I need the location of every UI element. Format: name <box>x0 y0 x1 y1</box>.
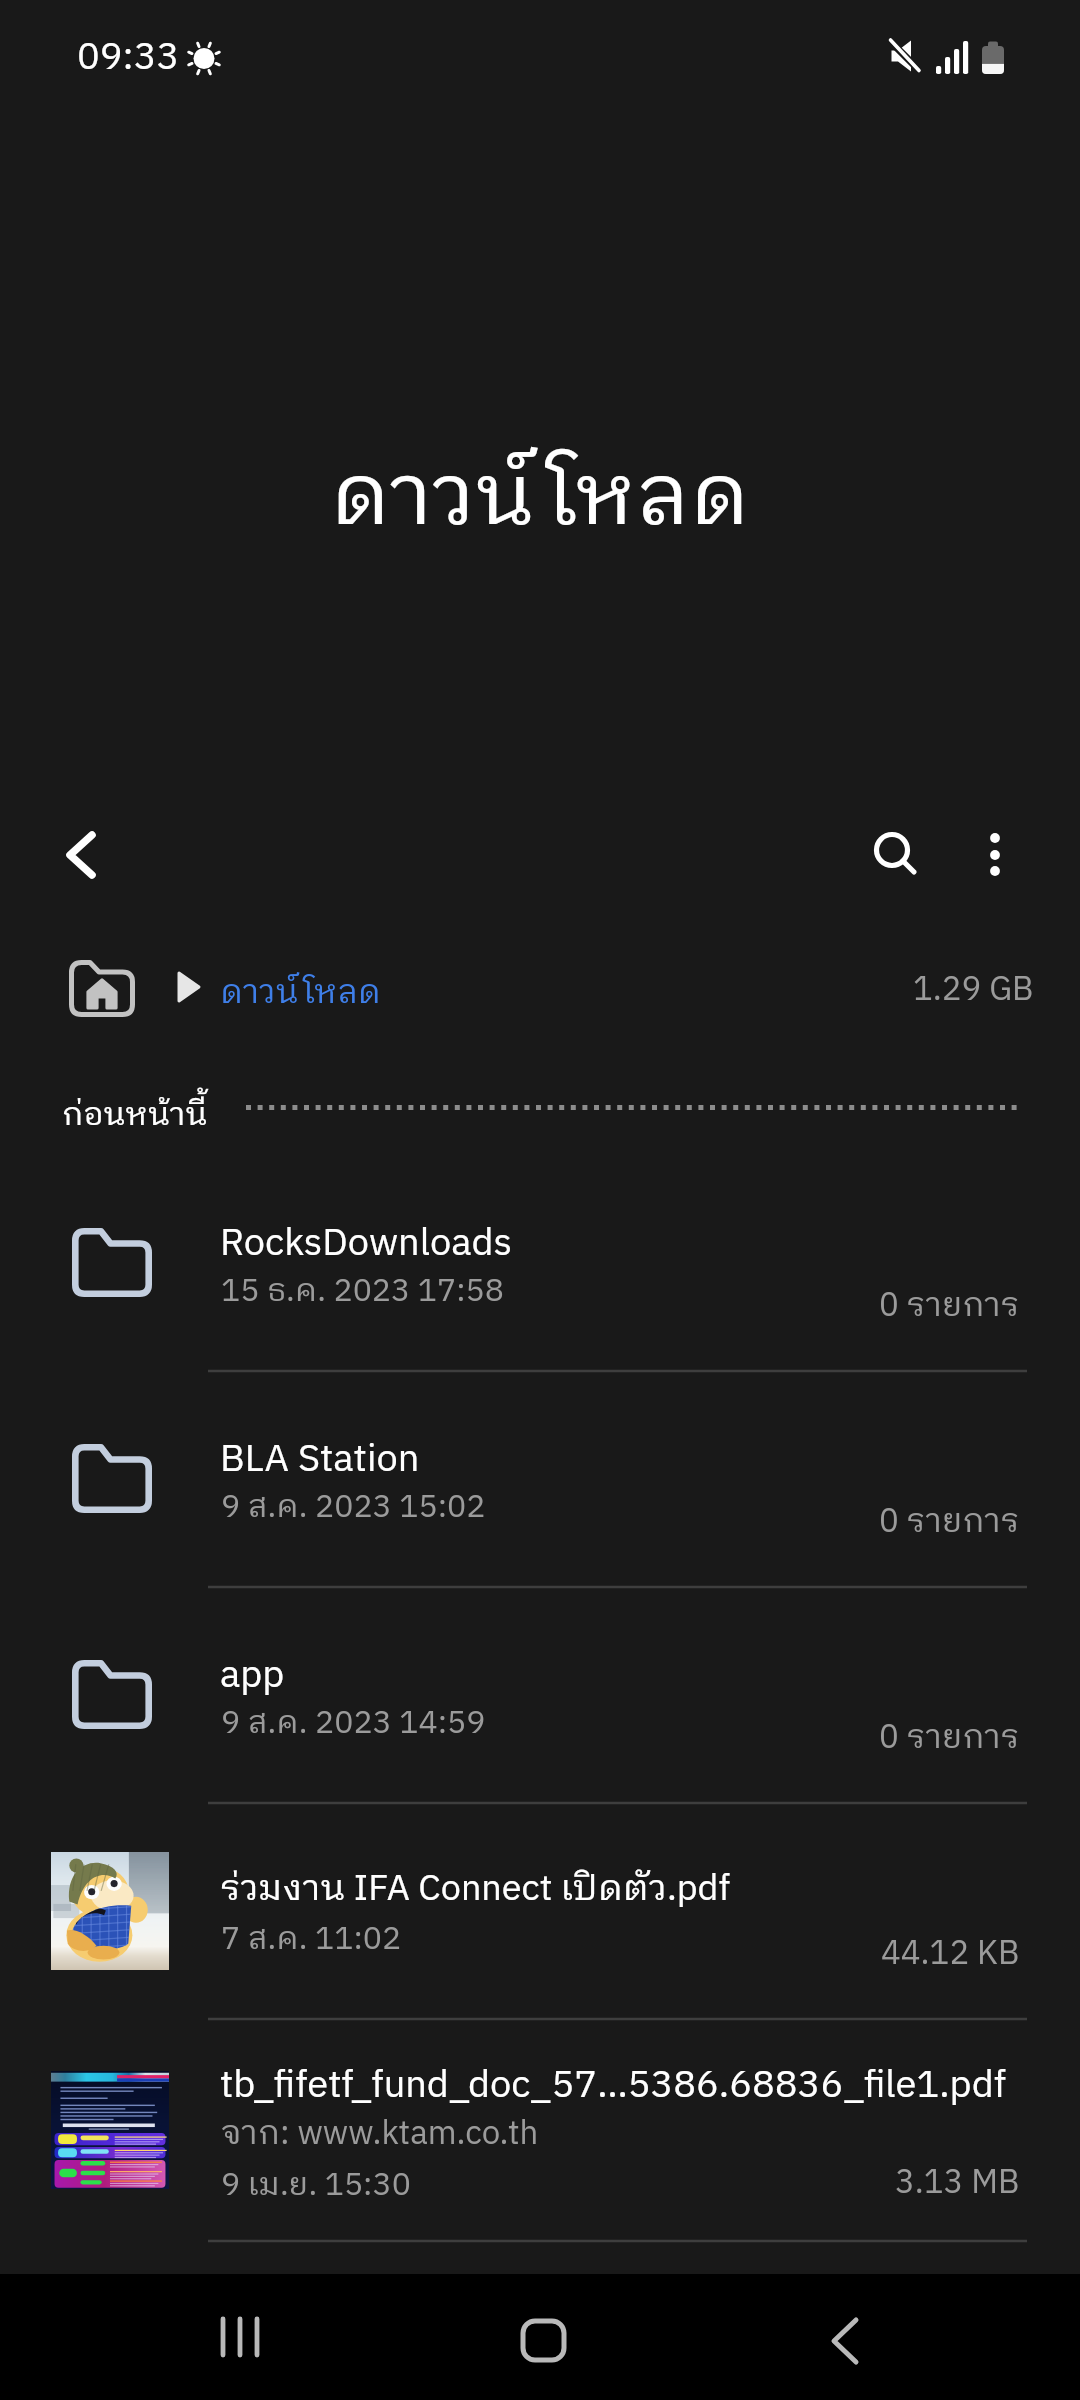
staticText: 44.12 KB <box>881 1927 1020 1981</box>
staticText: 0 รายการ <box>879 1711 1020 1765</box>
staticText: 3.13 MB <box>895 2156 1020 2210</box>
staticText: ร่วมงาน IFA Connect เปิดตัว.pdf <box>220 1860 731 1919</box>
staticText: จาก: www.ktam.co.th <box>221 2107 539 2161</box>
staticText: BLA Station <box>220 1429 420 1492</box>
staticText: 9 ส.ค. 2023 15:02 <box>221 1481 486 1534</box>
button[interactable]: Back <box>33 806 131 904</box>
button[interactable]: app <box>0 1585 1080 1801</box>
staticText: 0 รายการ <box>879 1495 1020 1549</box>
staticText: RocksDownloads <box>220 1213 513 1276</box>
button[interactable]: More options <box>946 806 1044 904</box>
button[interactable]: RocksDownloads <box>0 1153 1080 1369</box>
button[interactable]: ร่วมงาน IFA Connect เปิดตัว.pdf <box>0 1801 1080 2017</box>
staticText: 1.29 GB <box>913 963 1034 1017</box>
staticText: tb_fifetf_fund_doc_57…5386.68836_file1.p… <box>220 2055 1006 2118</box>
staticText: 09:33 <box>77 27 180 90</box>
button[interactable]: ดาวน์โหลด <box>220 961 381 1025</box>
staticText: 9 ส.ค. 2023 14:59 <box>221 1697 486 1750</box>
button[interactable]: Recent apps <box>180 2277 300 2397</box>
staticText: 7 ส.ค. 11:02 <box>221 1913 402 1966</box>
staticText: 0 รายการ <box>879 1279 1020 1333</box>
button[interactable]: Search <box>848 806 946 904</box>
button[interactable]: Home <box>480 2277 600 2397</box>
staticText: ก่อนหน้านี้ <box>62 1089 208 1142</box>
button[interactable]: BLA Station <box>0 1369 1080 1585</box>
staticText: ดาวน์โหลด <box>330 428 750 568</box>
staticText: ดาวน์โหลด <box>220 966 381 1020</box>
staticText: 15 ธ.ค. 2023 17:58 <box>221 1265 504 1318</box>
staticText: 9 เม.ย. 15:30 <box>221 2159 411 2212</box>
button[interactable]: tb_fifetf_fund_doc_57…5386.68836_file1.p… <box>0 2017 1080 2239</box>
button[interactable]: Back <box>780 2277 900 2397</box>
button[interactable]: Home folder <box>69 960 135 1017</box>
staticText: app <box>220 1645 285 1708</box>
